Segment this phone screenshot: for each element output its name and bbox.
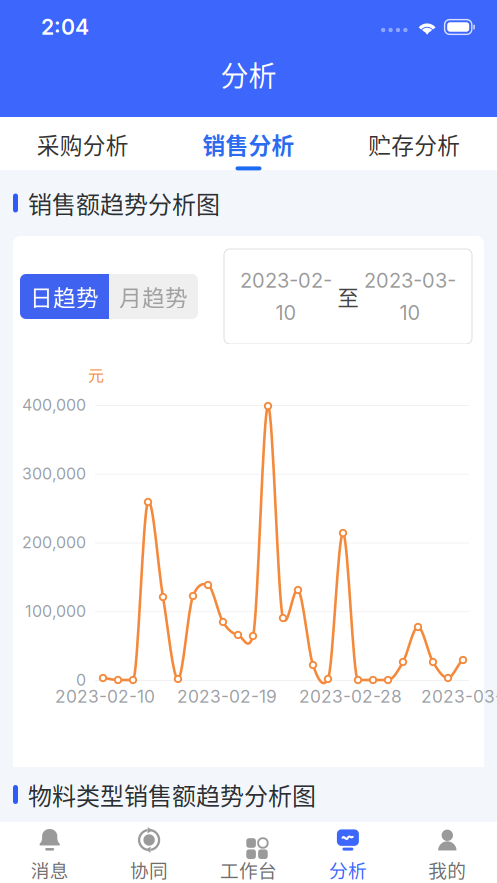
button[interactable]: 分析 [298, 822, 398, 883]
staticText: 0 [76, 670, 86, 690]
staticText: 我的 [428, 856, 466, 883]
staticText: 物料类型销售额趋势分析图 [28, 777, 316, 812]
button[interactable]: 我的 [398, 822, 497, 883]
staticText: 10 [275, 300, 296, 325]
button[interactable]: 销售分析 [166, 117, 331, 170]
button[interactable]: 2023-02- [224, 249, 472, 344]
staticText: 2023-02-28 [299, 686, 402, 707]
staticText: 200,000 [22, 533, 86, 552]
staticText: 2:04 [41, 14, 89, 40]
staticText: 采购分析 [37, 128, 129, 160]
staticText: 分析 [220, 54, 276, 94]
button[interactable]: 消息 [0, 822, 99, 883]
staticText: 销售分析 [202, 128, 294, 160]
staticText: 100,000 [25, 602, 86, 621]
button[interactable]: 月趋势 [109, 274, 198, 319]
staticText: 2023-02-10 [55, 686, 155, 707]
staticText: 2023-03- [364, 268, 456, 292]
button[interactable]: 工作台 [199, 822, 298, 883]
staticText: 元 [88, 363, 104, 386]
staticText: 消息 [31, 856, 69, 883]
button[interactable]: 采购分析 [0, 117, 166, 170]
staticText: 销售额趋势分析图 [28, 186, 220, 220]
staticText: 工作台 [220, 856, 277, 883]
staticText: 2023-02-19 [177, 686, 277, 707]
staticText: 10 [399, 300, 420, 325]
staticText: 至 [337, 281, 358, 312]
staticText: 2023-03- [421, 686, 497, 707]
staticText: 日趋势 [30, 280, 99, 313]
staticText: 分析 [329, 856, 367, 883]
button[interactable]: 协同 [99, 822, 199, 883]
staticText: 300,000 [22, 464, 86, 483]
button[interactable]: 日趋势 [20, 274, 109, 319]
staticText: 2023-02- [240, 268, 332, 292]
staticText: 协同 [130, 856, 168, 883]
staticText: 贮存分析 [368, 128, 460, 160]
staticText: 400,000 [22, 395, 86, 415]
staticText: 月趋势 [119, 280, 188, 313]
button[interactable]: 贮存分析 [331, 117, 497, 170]
